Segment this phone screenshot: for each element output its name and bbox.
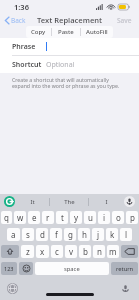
button[interactable]: h [78,228,90,241]
button[interactable]: Grammarly keyboard [4,196,15,207]
staticText: r [46,212,50,223]
button[interactable]: x [36,245,49,258]
button[interactable]: t [56,211,68,224]
staticText: The [64,198,75,206]
button[interactable]: Dictation [124,196,135,207]
staticText: z [26,246,30,257]
button[interactable]: o [112,211,124,224]
button[interactable]: Shortcut [0,56,139,73]
staticText: I [105,198,108,206]
button[interactable]: r [42,211,54,224]
button[interactable]: u [84,211,96,224]
staticText: Text Replacement [37,15,103,25]
button[interactable]: 123 [1,262,17,275]
staticText: l [125,229,128,240]
button[interactable]: It [15,194,49,209]
button[interactable]: j [92,228,104,241]
staticText: t [61,212,64,223]
button[interactable]: m [107,245,119,258]
staticText: q [4,212,9,223]
button[interactable]: Phrase [0,38,139,55]
staticText: v [69,246,74,257]
button[interactable]: w [14,211,26,224]
button[interactable]: return [111,262,138,275]
button[interactable]: b [79,245,91,258]
staticText: k [110,229,115,240]
button[interactable]: AutoFill [81,26,113,38]
button[interactable]: Paste [52,26,80,38]
button[interactable]: d [36,228,48,241]
button[interactable]: Emoji [19,262,33,275]
staticText: c [55,246,59,257]
staticText: u [88,212,93,223]
staticText: Copy [31,28,46,36]
staticText: Optional [46,60,75,70]
button[interactable]: Copy [26,26,51,38]
button[interactable]: I [89,194,124,209]
staticText: w [17,212,24,223]
button[interactable]: n [93,245,105,258]
staticText: a [11,229,16,240]
button[interactable]: s [22,228,34,241]
button[interactable]: k [106,228,118,241]
staticText: Phrase [12,42,42,52]
button[interactable]: Shift [1,245,19,258]
staticText: p [130,212,135,223]
button[interactable]: Dictation [120,283,131,294]
button[interactable]: Delete [121,245,138,258]
button[interactable]: l [120,228,132,241]
button[interactable]: Save [117,16,132,25]
button[interactable]: Back [4,16,26,25]
button[interactable]: c [51,245,63,258]
button[interactable]: a [7,228,20,241]
staticText: j [97,229,100,240]
staticText: d [40,229,45,240]
button[interactable]: space [35,262,109,275]
button[interactable]: q [1,211,12,224]
button[interactable]: v [65,245,77,258]
button[interactable]: y [70,211,82,224]
staticText: 123 [4,265,14,272]
button[interactable]: e [28,211,40,224]
staticText: AutoFill [86,28,108,36]
staticText: m [109,246,117,257]
staticText: x [40,246,45,257]
button[interactable]: The [50,194,88,209]
staticText: Paste [58,28,74,36]
button[interactable]: Next keyboard [7,283,18,294]
staticText: h [82,229,87,240]
staticText: s [26,229,30,240]
staticText: 1:36 [14,2,29,12]
staticText: y [74,212,79,223]
staticText: i [103,212,106,223]
staticText: n [97,246,102,257]
staticText: Create a shortcut that will automaticall… [12,76,125,90]
staticText: Back [11,16,26,25]
staticText: It [30,198,35,206]
staticText: g [68,229,73,240]
staticText: Shortcut [12,60,46,70]
button[interactable]: z [21,245,34,258]
staticText: o [116,212,121,223]
button[interactable]: i [98,211,110,224]
button[interactable]: p [126,211,138,224]
staticText: f [55,229,58,240]
button[interactable]: f [50,228,62,241]
button[interactable]: g [64,228,76,241]
staticText: b [83,246,88,257]
staticText: e [32,212,37,223]
staticText: space [64,265,80,273]
staticText: return [116,265,134,273]
